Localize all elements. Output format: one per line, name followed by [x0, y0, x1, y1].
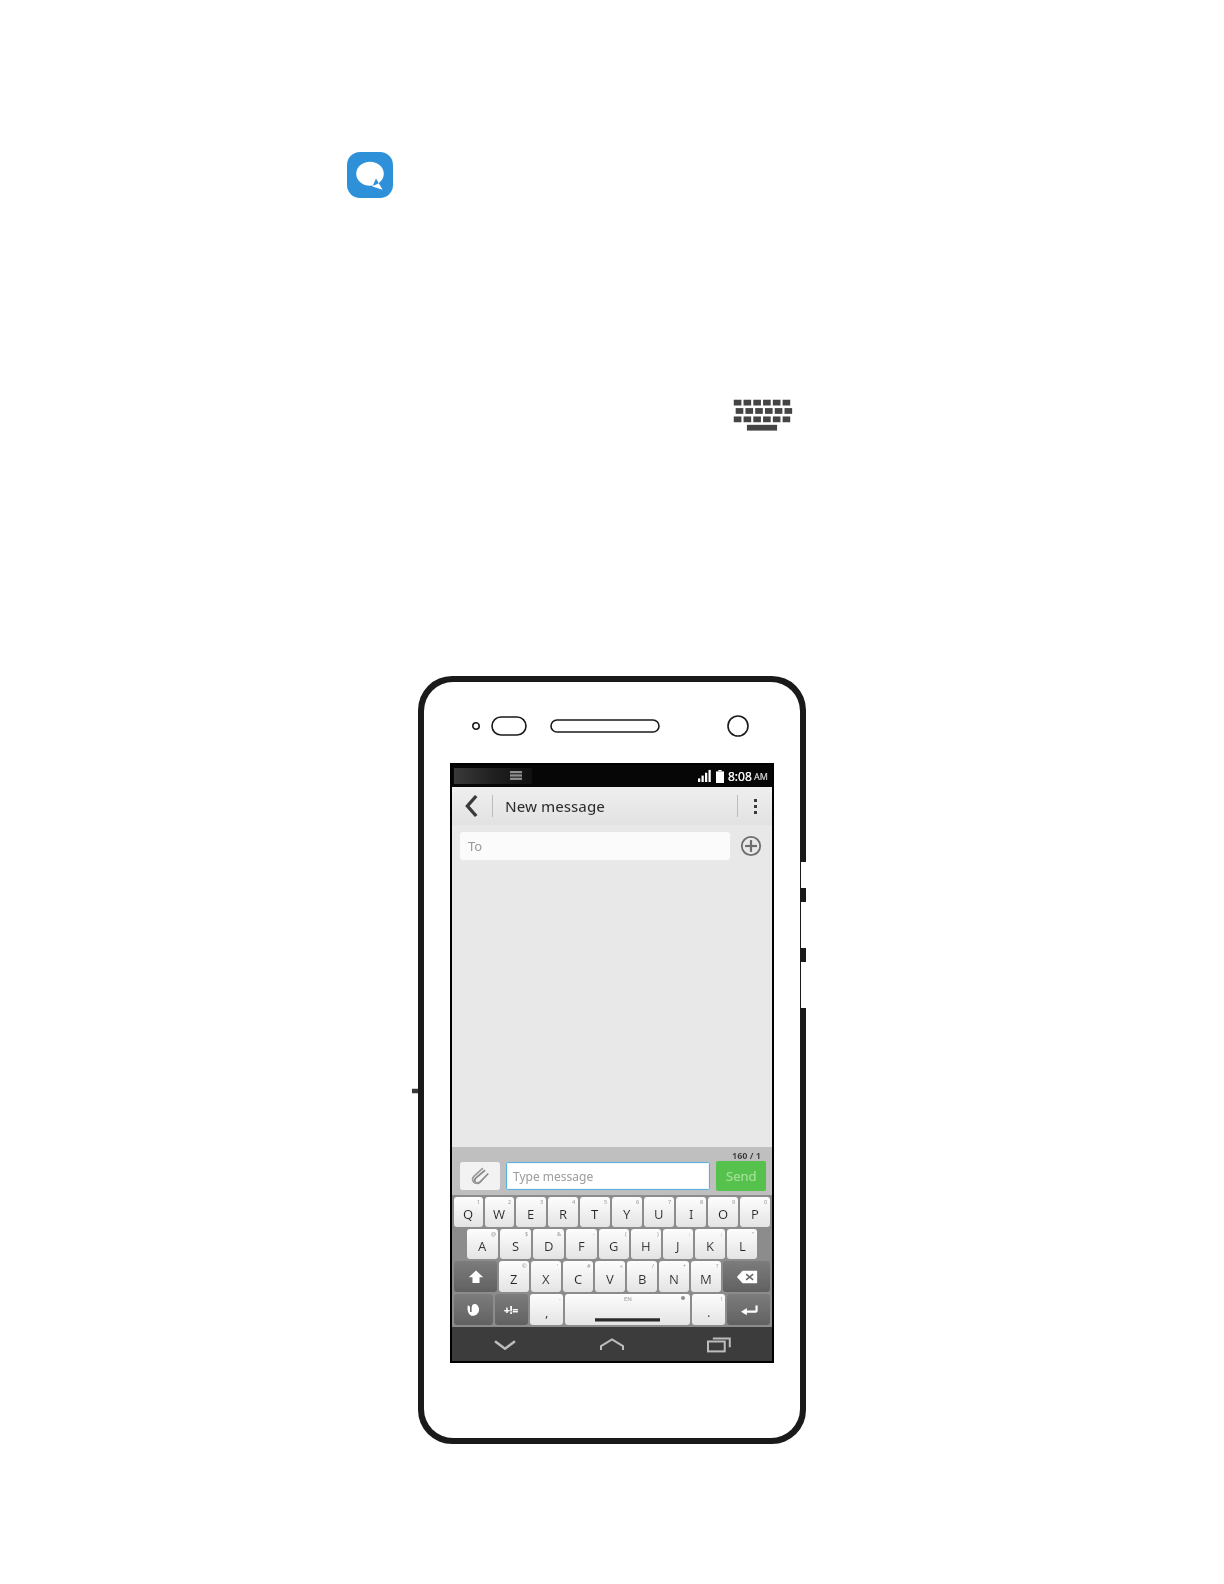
staticText: Z [510, 1270, 518, 1288]
staticText: 1 [477, 1198, 481, 1205]
staticText: S [512, 1237, 520, 1255]
button[interactable]: « [595, 1261, 625, 1292]
staticText: L [739, 1237, 746, 1255]
button[interactable]: Symbols [495, 1294, 528, 1325]
staticText: AM [754, 770, 768, 782]
button[interactable]: Space [565, 1294, 690, 1325]
button[interactable]: $ [500, 1229, 531, 1259]
staticText: R [559, 1205, 568, 1223]
staticText: V [606, 1270, 614, 1288]
button[interactable]: Keyboard [733, 398, 791, 428]
staticText: +!= [504, 1303, 519, 1317]
staticText: 5 [604, 1198, 608, 1205]
staticText: ! [721, 1295, 723, 1302]
staticText: ? [716, 1262, 719, 1269]
staticText: M [700, 1270, 712, 1288]
staticText: 4 [572, 1198, 576, 1205]
button[interactable]: Delete [723, 1261, 770, 1292]
button[interactable]: : [663, 1229, 693, 1259]
staticText: C [574, 1270, 583, 1288]
button[interactable]: Messaging app [347, 152, 393, 198]
button[interactable]: 9 [708, 1197, 738, 1227]
button[interactable]: - [566, 1229, 597, 1259]
staticText: B [638, 1270, 647, 1288]
button[interactable]: To [460, 832, 730, 860]
button[interactable]: Type message [506, 1162, 710, 1190]
staticText: « [620, 1262, 623, 1269]
button[interactable]: 2 [485, 1197, 514, 1227]
staticText: 3 [540, 1198, 544, 1205]
staticText: I [689, 1205, 694, 1223]
button[interactable]: 3 [516, 1197, 546, 1227]
button[interactable]: 4 [548, 1197, 578, 1227]
staticText: EN [624, 1295, 632, 1303]
staticText: H [641, 1237, 651, 1255]
button[interactable]: ; [695, 1229, 725, 1259]
staticText: 8:08 [728, 768, 752, 784]
staticText: Type message [513, 1168, 594, 1184]
staticText: $ [525, 1230, 529, 1237]
button[interactable]: / [627, 1261, 657, 1292]
button[interactable]: Voice input [454, 1294, 493, 1325]
button[interactable]: 1 [454, 1197, 483, 1227]
button[interactable]: Enter [727, 1294, 770, 1325]
staticText: To [468, 837, 483, 855]
button[interactable]: ( [599, 1229, 629, 1259]
staticText: 0 [764, 1198, 768, 1205]
staticText: ( [625, 1230, 627, 1237]
staticText: / [652, 1262, 655, 1269]
staticText: ' [557, 1262, 559, 1269]
staticText: K [706, 1237, 715, 1255]
button[interactable]: Send [716, 1161, 766, 1191]
button[interactable]: + [659, 1261, 689, 1292]
button[interactable]: ' [531, 1261, 561, 1292]
staticText: P [751, 1205, 759, 1223]
button[interactable]: @ [467, 1229, 498, 1259]
staticText: - [593, 1230, 595, 1237]
staticText: New message [505, 796, 605, 816]
button[interactable]: - [530, 1294, 563, 1325]
button[interactable]: ! [692, 1294, 725, 1325]
staticText: W [493, 1205, 506, 1223]
button[interactable]: " [727, 1229, 757, 1259]
staticText: X [542, 1270, 550, 1288]
staticText: Q [463, 1205, 474, 1223]
staticText: O [718, 1205, 729, 1223]
staticText: , [545, 1303, 549, 1321]
staticText: F [578, 1237, 585, 1255]
staticText: A [478, 1237, 487, 1255]
button[interactable]: # [563, 1261, 593, 1292]
staticText: " [752, 1230, 755, 1237]
staticText: - [559, 1295, 561, 1302]
staticText: # [587, 1262, 591, 1269]
staticText: 9 [732, 1198, 736, 1205]
button[interactable]: Recent apps [665, 1327, 772, 1361]
button[interactable]: Home [558, 1327, 665, 1361]
button[interactable]: Hide keyboard [452, 1327, 558, 1361]
button[interactable]: ) [631, 1229, 661, 1259]
staticText: T [591, 1205, 599, 1223]
staticText: G [609, 1237, 619, 1255]
button[interactable]: 7 [644, 1197, 674, 1227]
staticText: 2 [508, 1198, 512, 1205]
button[interactable]: 5 [580, 1197, 610, 1227]
button[interactable]: & [533, 1229, 564, 1259]
button[interactable]: 8 [676, 1197, 706, 1227]
staticText: & [557, 1230, 562, 1237]
staticText: 160 / 1 [732, 1149, 762, 1161]
button[interactable]: © [499, 1261, 529, 1292]
staticText: Y [623, 1205, 631, 1223]
staticText: ; [721, 1230, 723, 1237]
staticText: ) [657, 1230, 659, 1237]
staticText: © [522, 1262, 527, 1269]
button[interactable]: 6 [612, 1197, 642, 1227]
staticText: Send [726, 1167, 757, 1185]
button[interactable]: ? [691, 1261, 721, 1292]
button[interactable]: Add recipient [738, 833, 764, 859]
button[interactable]: 0 [740, 1197, 770, 1227]
button[interactable]: Back [452, 787, 492, 825]
staticText: + [683, 1262, 687, 1269]
button[interactable]: Shift [454, 1261, 497, 1292]
button[interactable]: Attach [460, 1162, 500, 1190]
button[interactable]: More options [738, 787, 772, 825]
